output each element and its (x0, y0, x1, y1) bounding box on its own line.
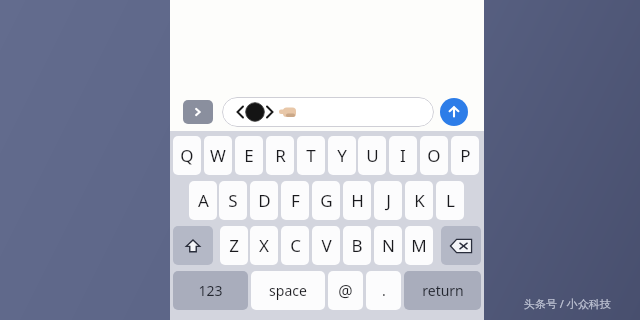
button[interactable]: Q (173, 136, 201, 175)
staticText: O (427, 144, 441, 167)
staticText: U (366, 144, 379, 167)
staticText: L (446, 189, 455, 212)
button[interactable]: K (405, 181, 433, 220)
staticText: K (414, 189, 425, 212)
button[interactable]: Z (220, 226, 248, 265)
button[interactable]: Backspace (441, 226, 481, 265)
staticText: X (259, 234, 269, 257)
staticText: S (228, 189, 238, 212)
button[interactable]: space (251, 271, 325, 310)
staticText: . (382, 281, 386, 300)
staticText: A (198, 189, 209, 212)
button[interactable]: O (420, 136, 448, 175)
button[interactable]: N (374, 226, 402, 265)
staticText: return (422, 281, 464, 300)
staticText: T (306, 144, 316, 167)
staticText: I (400, 144, 406, 167)
staticText: D (258, 189, 271, 212)
staticText: B (351, 234, 363, 257)
staticText: P (460, 144, 471, 167)
staticText: 123 (198, 281, 223, 300)
button[interactable]: C (281, 226, 309, 265)
button[interactable] (222, 97, 434, 127)
button[interactable]: G (312, 181, 340, 220)
button[interactable]: Send (440, 98, 468, 126)
button[interactable]: D (250, 181, 278, 220)
button[interactable]: S (219, 181, 247, 220)
button[interactable]: P (451, 136, 479, 175)
button[interactable]: H (343, 181, 371, 220)
button[interactable]: R (266, 136, 294, 175)
staticText: Q (180, 144, 194, 167)
button[interactable]: . (366, 271, 401, 310)
staticText: C (290, 234, 301, 257)
button[interactable]: M (405, 226, 433, 265)
staticText: M (411, 234, 427, 257)
button[interactable]: I (389, 136, 417, 175)
button[interactable]: V (312, 226, 340, 265)
staticText: N (382, 234, 395, 257)
button[interactable]: J (374, 181, 402, 220)
staticText: V (321, 234, 332, 257)
staticText: space (269, 281, 307, 300)
button[interactable]: L (436, 181, 464, 220)
staticText: Z (229, 234, 239, 257)
button[interactable]: @ (328, 271, 363, 310)
staticText: G (320, 189, 333, 212)
button[interactable]: Expand (183, 100, 213, 124)
staticText: F (291, 189, 300, 212)
button[interactable]: Shift (173, 226, 213, 265)
staticText: @ (338, 280, 353, 302)
button[interactable]: B (343, 226, 371, 265)
button[interactable]: W (204, 136, 232, 175)
button[interactable]: Y (328, 136, 356, 175)
staticText: 头条号 / 小众科技 (524, 296, 611, 311)
staticText: Y (337, 144, 347, 167)
button[interactable]: 123 (173, 271, 248, 310)
staticText: J (386, 189, 391, 212)
button[interactable]: A (189, 181, 217, 220)
button[interactable]: X (250, 226, 278, 265)
button[interactable]: return (404, 271, 481, 310)
staticText: E (244, 144, 254, 167)
staticText: R (275, 144, 286, 167)
button[interactable]: F (281, 181, 309, 220)
staticText: W (210, 144, 226, 167)
button[interactable]: T (297, 136, 325, 175)
button[interactable]: U (358, 136, 386, 175)
button[interactable]: E (235, 136, 263, 175)
staticText: H (351, 189, 364, 212)
